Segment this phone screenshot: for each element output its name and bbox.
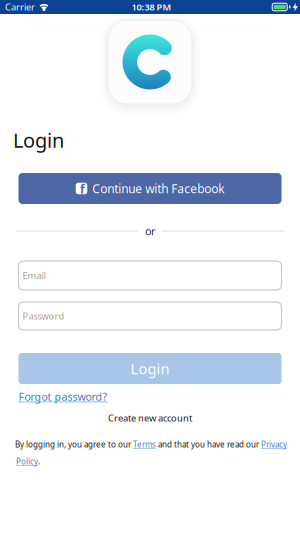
button[interactable]: Privacy [261, 439, 287, 450]
button[interactable]: f [18, 173, 281, 204]
staticText: Login [130, 359, 169, 378]
staticText: f [80, 181, 85, 197]
staticText: Privacy [261, 439, 287, 450]
staticText: Carrier [5, 1, 35, 13]
staticText: Forgot password? [18, 389, 107, 404]
staticText: and that you have read our [158, 439, 259, 450]
staticText: Create new account [108, 412, 192, 424]
staticText: . [38, 456, 40, 467]
staticText: Policy [16, 456, 38, 467]
textField[interactable]: Email [22, 269, 146, 282]
button[interactable]: Terms [133, 439, 156, 450]
staticText: By logging in, you agree to our [15, 439, 131, 450]
button[interactable]: Policy [16, 456, 38, 467]
secureTextField[interactable]: Password [22, 310, 146, 322]
staticText: Continue with Facebook [92, 180, 224, 196]
staticText: 10:38 PM [131, 1, 171, 13]
staticText: or [145, 224, 155, 238]
button[interactable]: Create new account [108, 412, 192, 424]
staticText: Login [13, 127, 64, 153]
staticText: Terms [133, 439, 156, 450]
staticText: Email [22, 269, 45, 282]
button[interactable]: Forgot password? [18, 389, 107, 404]
button[interactable]: Login [18, 353, 281, 384]
staticText: Password [22, 310, 64, 322]
